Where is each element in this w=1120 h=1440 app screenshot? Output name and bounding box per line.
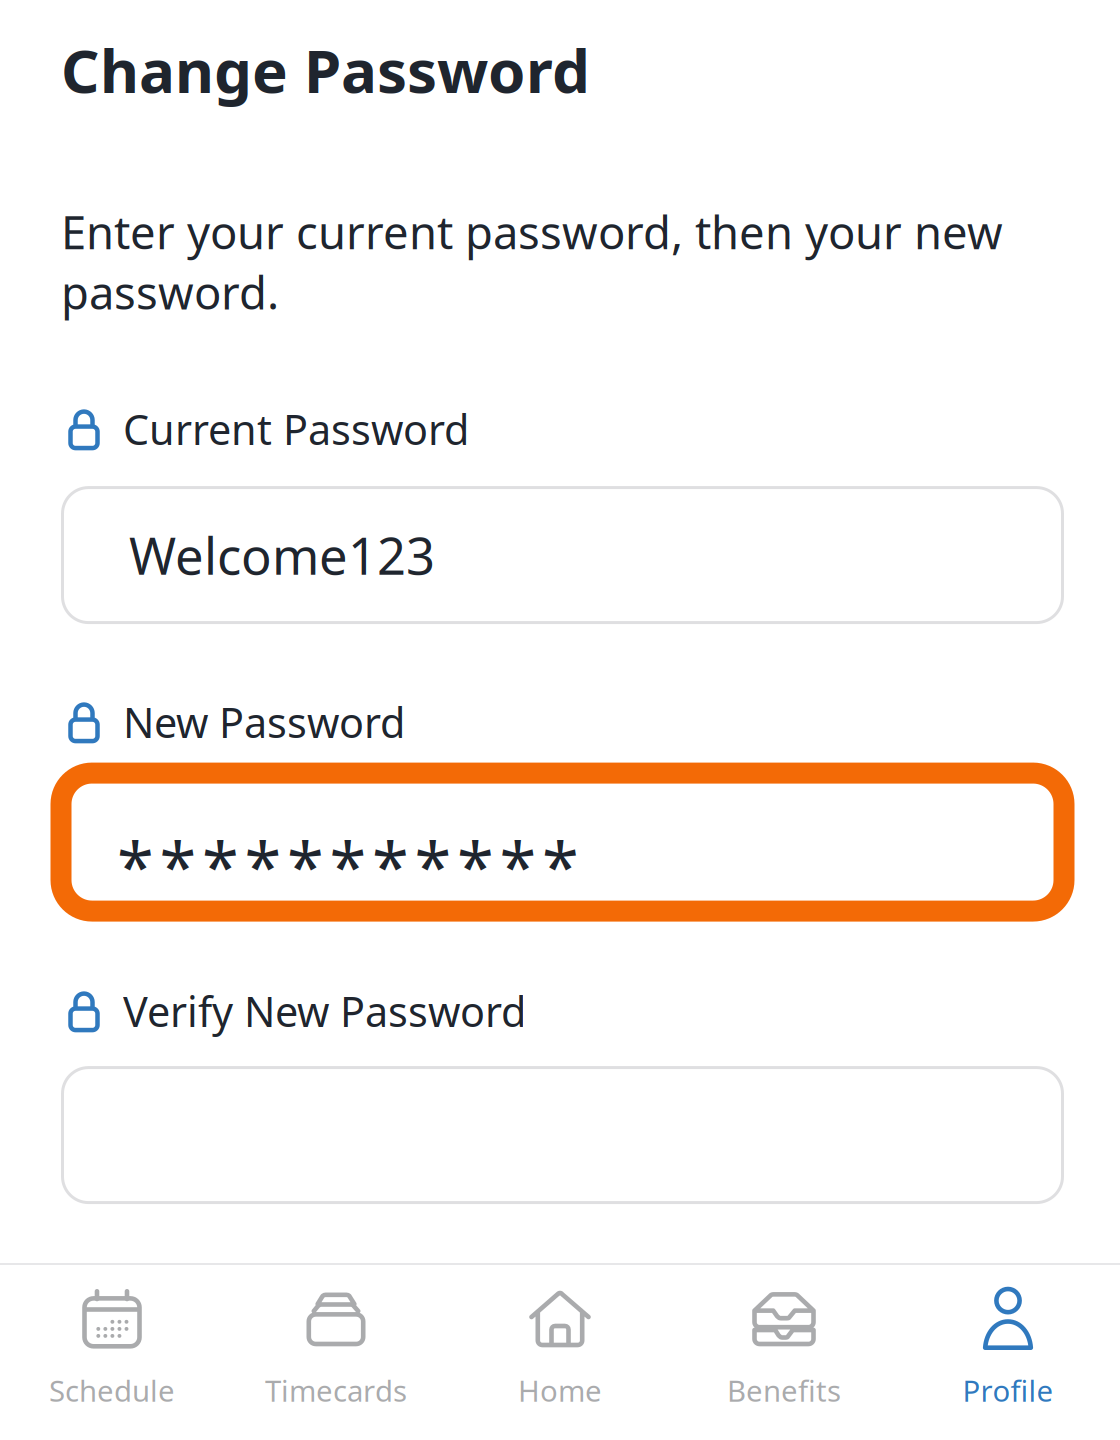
button[interactable]: Schedule <box>0 1264 224 1440</box>
button[interactable]: Benefits <box>672 1264 896 1440</box>
staticText: *********** <box>117 822 579 910</box>
staticText: Current Password <box>123 402 469 456</box>
button[interactable]: Current Password <box>61 486 1064 624</box>
staticText: Home <box>518 1371 602 1410</box>
staticText: Verify New Password <box>123 984 526 1038</box>
button[interactable]: Verify New Password <box>61 1066 1064 1204</box>
button[interactable]: Timecards <box>224 1264 448 1440</box>
staticText: Schedule <box>49 1371 175 1410</box>
staticText: Benefits <box>727 1371 841 1410</box>
button[interactable]: Home <box>448 1264 672 1440</box>
staticText: Profile <box>962 1371 1053 1410</box>
button[interactable]: New Password <box>61 773 1064 911</box>
staticText: Change Password <box>61 30 590 110</box>
staticText: Enter your current password, then your n… <box>61 202 1003 322</box>
staticText: New Password <box>123 695 405 749</box>
staticText: Welcome123 <box>129 521 435 589</box>
button[interactable]: Profile <box>896 1264 1120 1440</box>
staticText: Timecards <box>265 1371 407 1410</box>
